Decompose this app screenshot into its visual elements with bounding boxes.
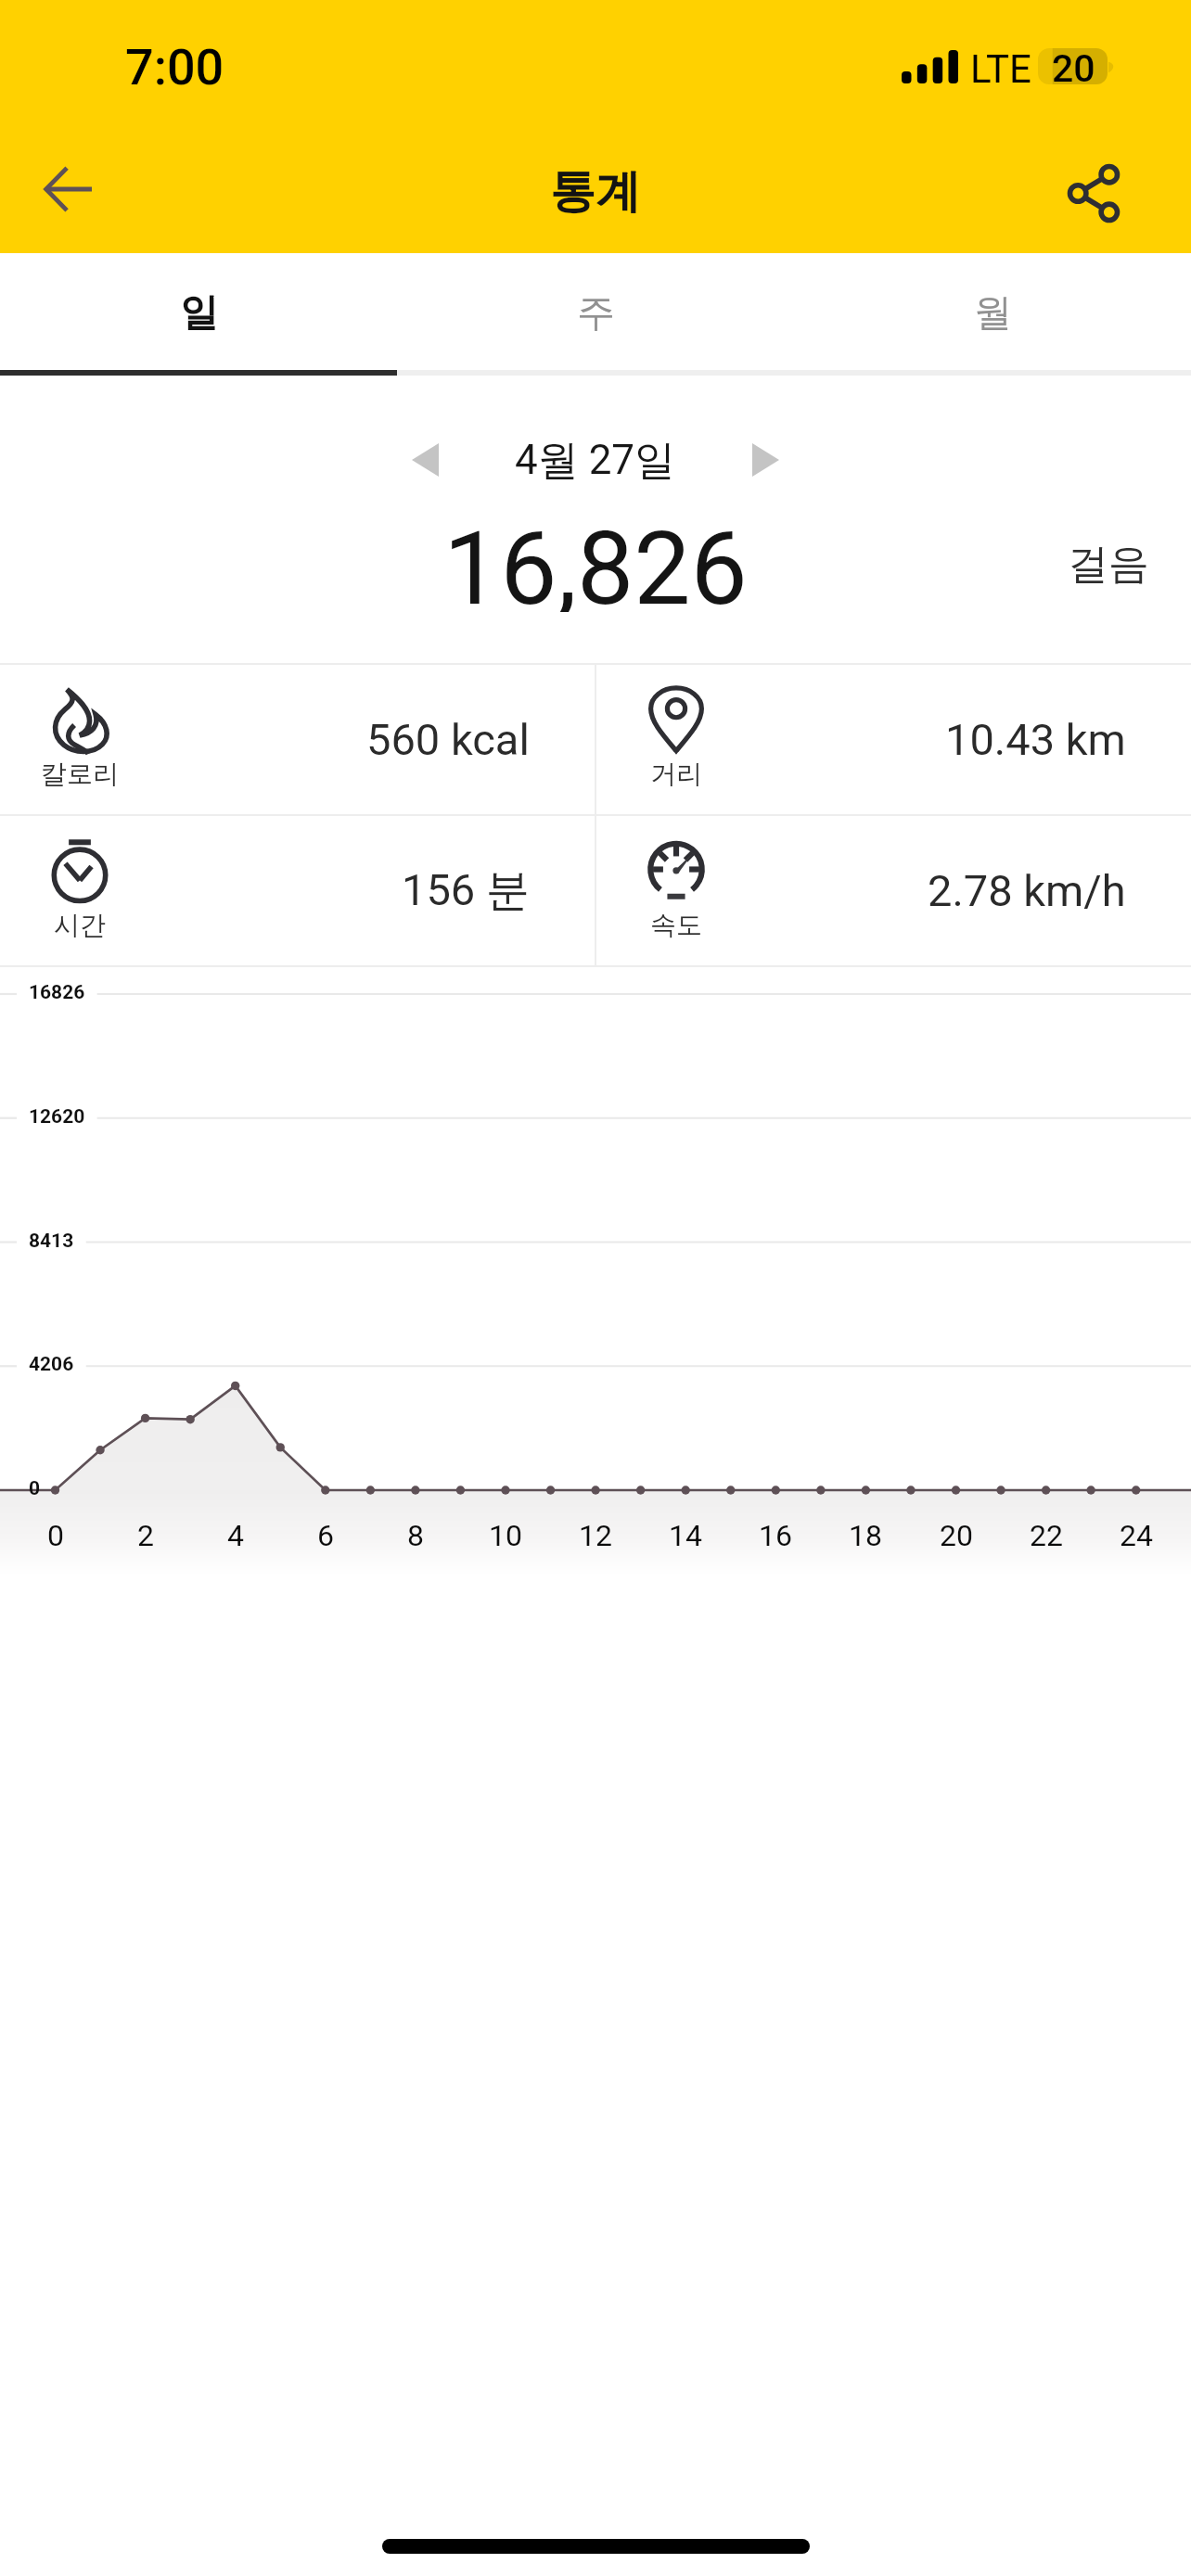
staticText: 20 xyxy=(928,1518,984,1553)
staticText: 칼로리 xyxy=(41,758,119,790)
staticText: 16,826 xyxy=(443,510,748,612)
staticText: 24 xyxy=(1108,1518,1164,1553)
staticText: 18 xyxy=(838,1518,893,1553)
staticText: 거리 xyxy=(650,758,702,790)
staticText: 4월 27일 xyxy=(515,435,676,486)
button[interactable]: Back xyxy=(22,144,113,235)
staticText: 7:00 xyxy=(125,38,224,96)
staticText: 16 xyxy=(748,1518,803,1553)
staticText: 6 xyxy=(298,1518,353,1553)
staticText: 통계 xyxy=(550,163,641,221)
staticText: 4206 xyxy=(29,1353,74,1376)
button[interactable]: Next day xyxy=(725,432,806,488)
staticText: 12620 xyxy=(29,1105,85,1129)
staticText: 2 xyxy=(118,1518,173,1553)
staticText: 8413 xyxy=(29,1230,74,1253)
button[interactable]: 거리 xyxy=(596,665,1191,814)
button[interactable]: 주 xyxy=(397,253,794,370)
staticText: 0 xyxy=(28,1518,83,1553)
staticText: 주 xyxy=(577,289,615,338)
staticText: 10.43 km xyxy=(945,714,1126,765)
staticText: 22 xyxy=(1018,1518,1074,1553)
button[interactable]: Previous day xyxy=(385,432,466,488)
staticText: 156 분 xyxy=(402,863,530,918)
button[interactable]: 칼로리 xyxy=(0,665,595,814)
staticText: 일 xyxy=(180,289,218,338)
button[interactable]: 속도 xyxy=(596,816,1191,965)
staticText: 560 kcal xyxy=(366,714,530,765)
staticText: 14 xyxy=(658,1518,713,1553)
staticText: 16826 xyxy=(29,981,85,1004)
button[interactable]: 일 xyxy=(0,253,397,370)
staticText: 10 xyxy=(478,1518,533,1553)
staticText: LTE xyxy=(970,46,1031,92)
staticText: 걸음 xyxy=(1068,539,1149,590)
button[interactable]: 월 xyxy=(794,253,1191,370)
staticText: 12 xyxy=(568,1518,623,1553)
staticText: 월 xyxy=(974,289,1012,338)
button[interactable]: 시간 xyxy=(0,816,595,965)
staticText: 0 xyxy=(29,1477,41,1500)
staticText: 속도 xyxy=(650,909,702,941)
button[interactable]: Share xyxy=(1048,147,1139,238)
staticText: 4 xyxy=(208,1518,263,1553)
staticText: 시간 xyxy=(54,909,106,941)
staticText: 8 xyxy=(388,1518,443,1553)
staticText: 20 xyxy=(1052,46,1095,83)
staticText: 2.78 km/h xyxy=(928,865,1126,916)
